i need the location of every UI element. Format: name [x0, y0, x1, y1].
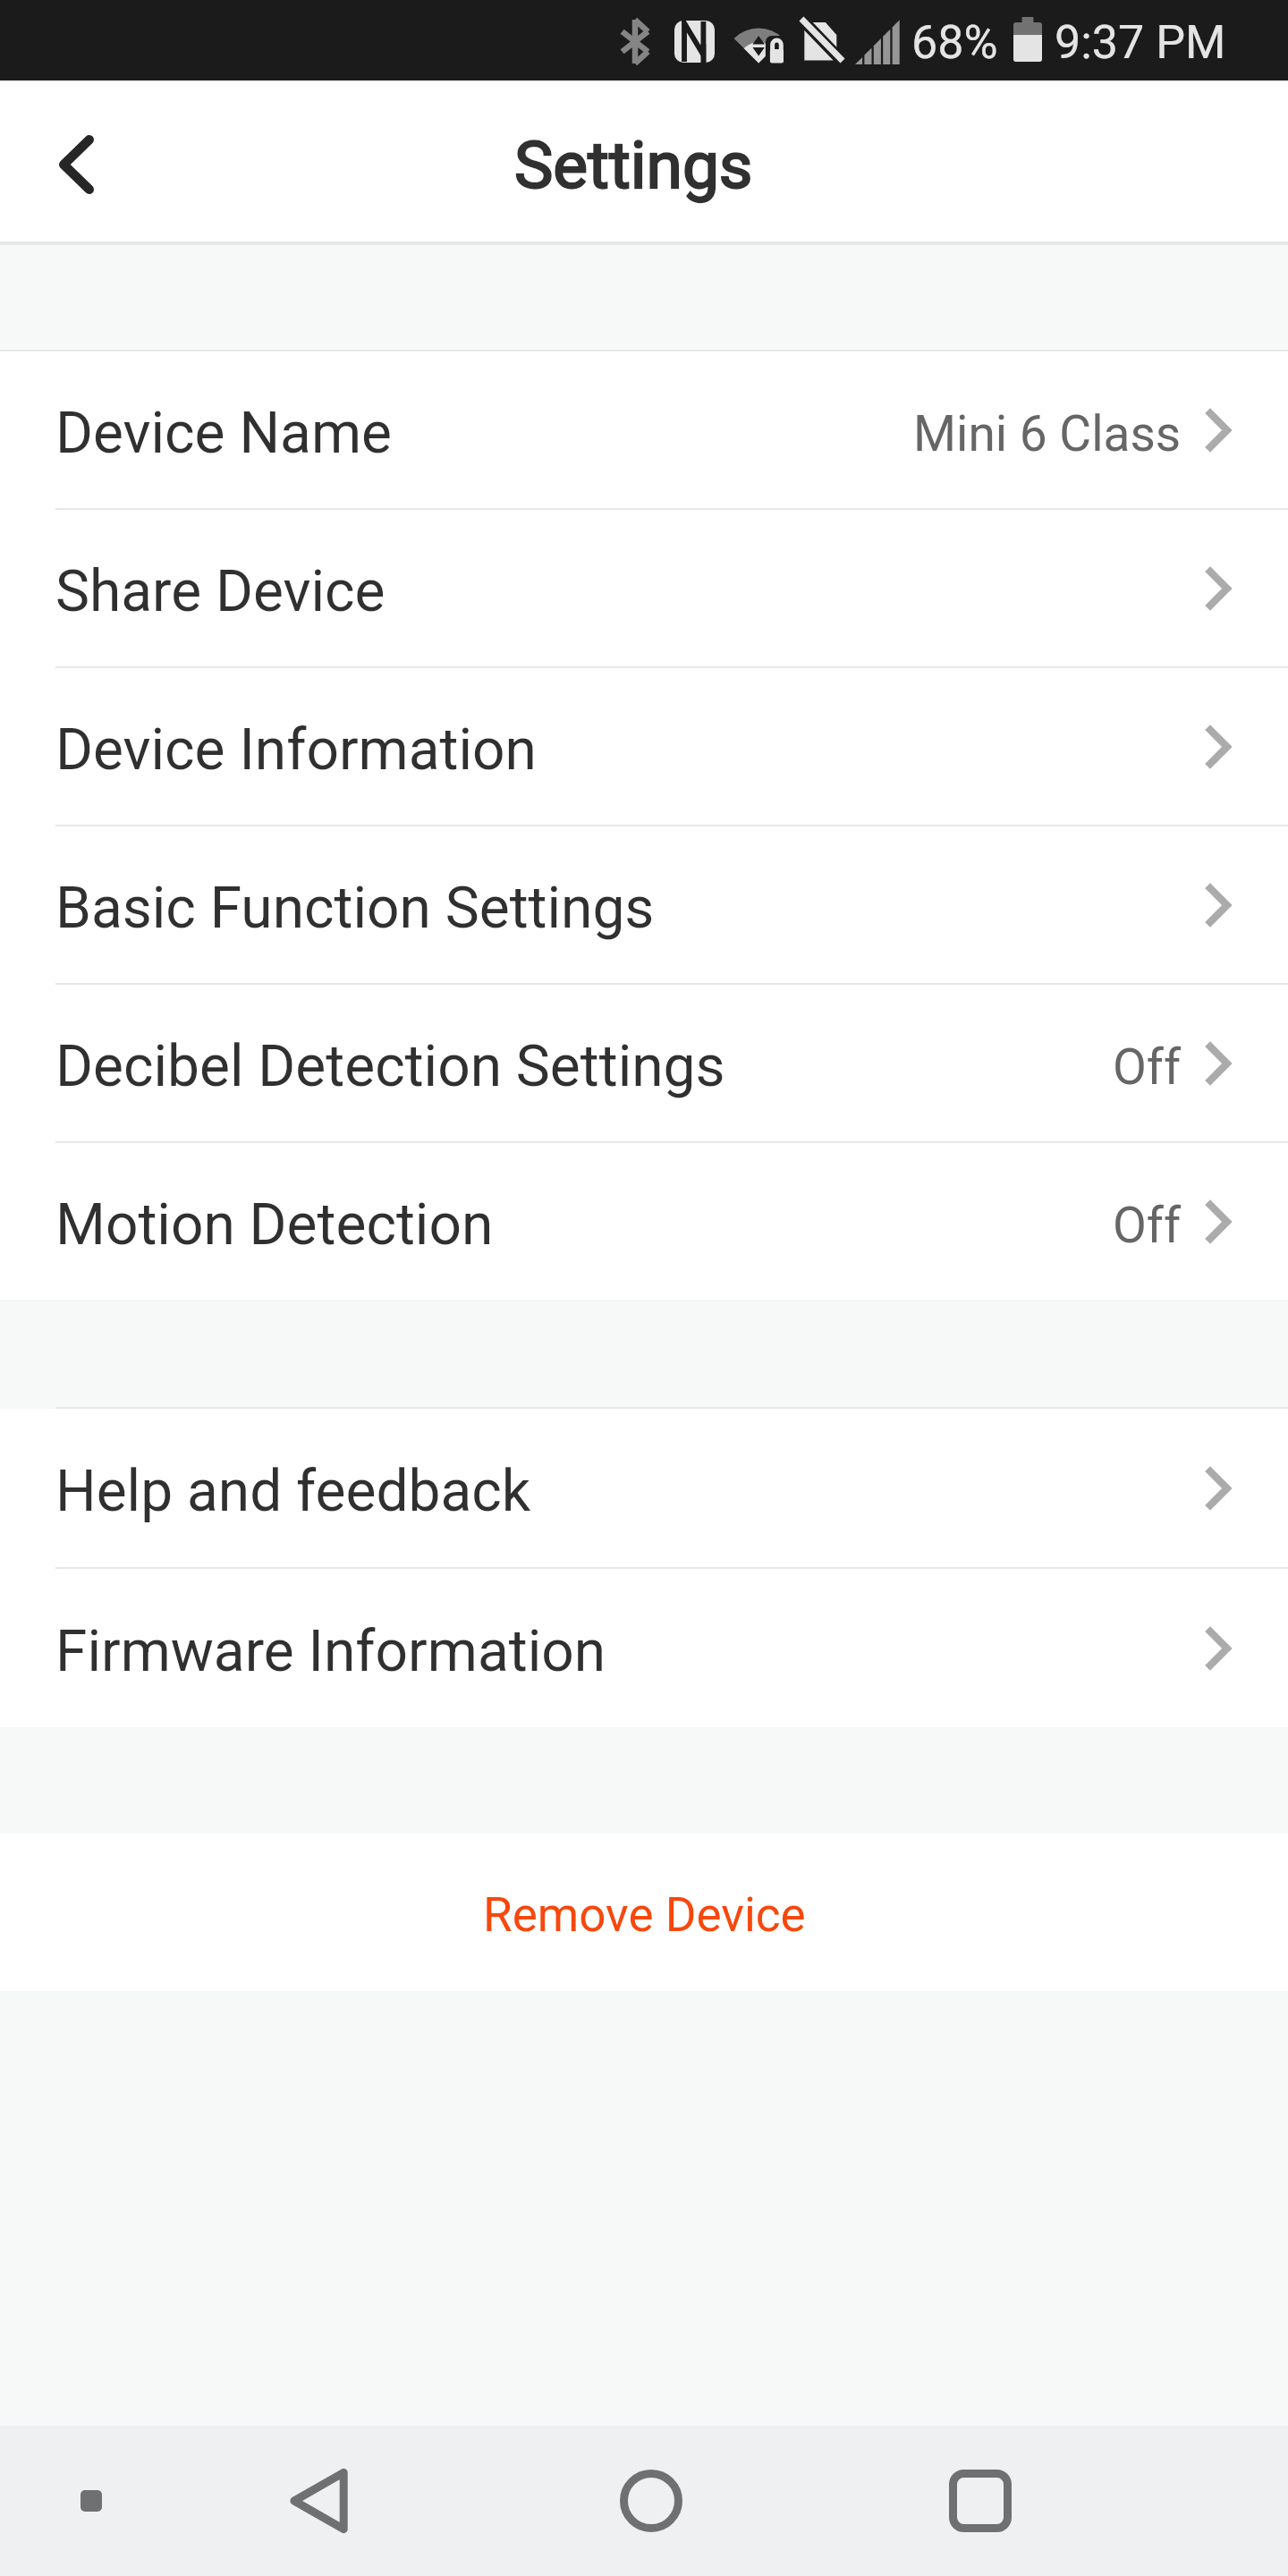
button[interactable]: Hide navigation bar [63, 2472, 120, 2529]
staticText: Firmware Information [55, 1618, 606, 1685]
staticText: Remove Device [483, 1887, 806, 1943]
staticText: Share Device [55, 558, 386, 625]
button[interactable]: Device Name [0, 352, 1288, 508]
button[interactable]: Back [260, 2426, 382, 2576]
button[interactable]: Device Information [0, 668, 1288, 825]
staticText: Off [1113, 1038, 1182, 1096]
button[interactable]: Help and feedback [0, 1409, 1288, 1567]
staticText: Motion Detection [55, 1191, 494, 1258]
button[interactable]: Share Device [0, 510, 1288, 666]
button[interactable]: Remove Device [0, 1834, 1288, 1991]
button[interactable]: Motion Detection [0, 1143, 1288, 1300]
staticText: Device Name [55, 400, 392, 467]
staticText: Device Information [55, 716, 537, 784]
button[interactable]: Decibel Detection Settings [0, 985, 1288, 1141]
button[interactable]: Home [590, 2426, 712, 2576]
staticText: Basic Function Settings [55, 875, 655, 942]
button[interactable]: Basic Function Settings [0, 826, 1288, 983]
staticText: Decibel Detection Settings [55, 1033, 725, 1100]
button[interactable]: Back [0, 80, 152, 243]
button[interactable]: Recent apps [919, 2426, 1041, 2576]
staticText: 68% [911, 15, 998, 70]
staticText: Settings [514, 127, 753, 204]
staticText: Mini 6 Class [913, 405, 1182, 462]
button[interactable]: Firmware Information [0, 1569, 1288, 1727]
staticText: Off [1113, 1197, 1182, 1254]
staticText: 9:37 PM [1055, 15, 1226, 70]
staticText: Help and feedback [55, 1458, 531, 1525]
